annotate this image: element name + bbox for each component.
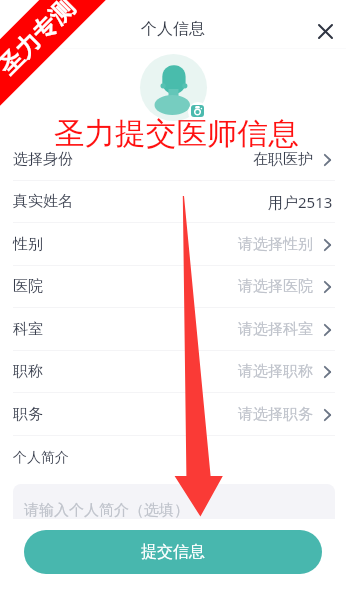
staticText: 职称 — [13, 362, 43, 381]
button[interactable]: 请输入个人简介（选填） — [13, 484, 335, 519]
button[interactable]: Change avatar — [191, 105, 204, 117]
staticText: 请选择科室 — [238, 320, 313, 339]
staticText: 科室 — [13, 320, 43, 339]
staticText: 圣力提交医师信息 — [54, 115, 299, 154]
staticText: 请选择医院 — [238, 277, 313, 296]
button[interactable]: 职称 — [0, 350, 346, 393]
staticText: 请选择职称 — [238, 362, 313, 381]
button[interactable]: Close — [307, 13, 343, 49]
staticText: 医院 — [13, 277, 43, 296]
staticText: 请选择职务 — [238, 405, 313, 424]
staticText: 用户2513 — [268, 192, 333, 212]
staticText: 个人信息 — [141, 19, 205, 39]
button[interactable]: 医院 — [0, 265, 346, 308]
staticText: 在职医护 — [253, 150, 313, 169]
button[interactable]: 职务 — [0, 393, 346, 436]
staticText: 提交信息 — [141, 542, 205, 562]
staticText: 个人简介 — [13, 449, 69, 467]
staticText: 性别 — [13, 235, 43, 254]
staticText: 请选择性别 — [238, 235, 313, 254]
staticText: 真实姓名 — [13, 192, 73, 211]
staticText: 请输入个人简介（选填） — [24, 501, 189, 519]
staticText: 圣力专测 — [0, 0, 81, 81]
button[interactable]: 提交信息 — [24, 530, 322, 574]
button[interactable]: 性别 — [0, 223, 346, 266]
staticText: 职务 — [13, 405, 43, 424]
button[interactable]: 选择身份 — [0, 138, 346, 181]
button[interactable]: 科室 — [0, 308, 346, 351]
button[interactable]: 真实姓名 — [0, 180, 346, 223]
staticText: 选择身份 — [13, 150, 73, 169]
